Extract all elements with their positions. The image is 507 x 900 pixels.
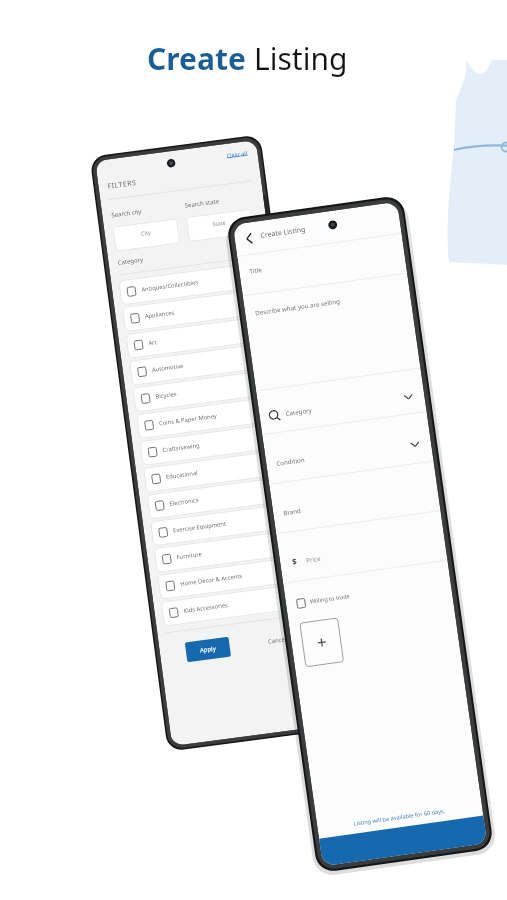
button[interactable]: Create Listing screenshot showcase xyxy=(0,0,507,900)
